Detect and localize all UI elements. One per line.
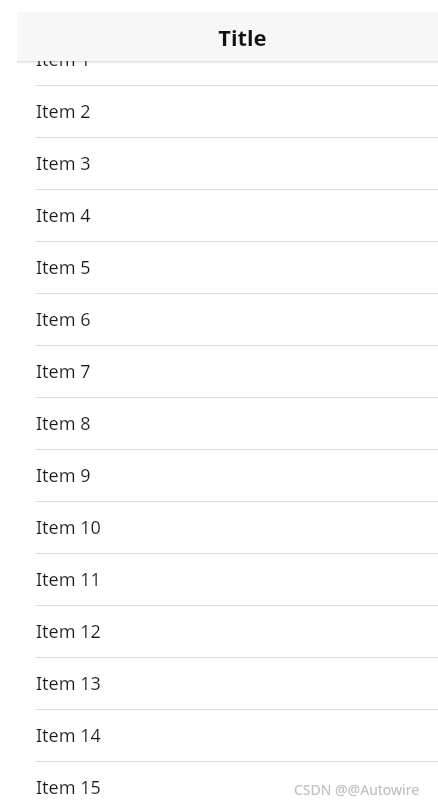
button[interactable]: Item 15	[0, 762, 438, 811]
button[interactable]: Item 5	[0, 242, 438, 294]
staticText: Item 7	[36, 359, 91, 384]
button[interactable]: Item 11	[0, 554, 438, 606]
staticText: Title	[218, 22, 267, 52]
button[interactable]: Item 2	[0, 86, 438, 138]
button[interactable]: Title	[17, 12, 438, 61]
button[interactable]: Item 14	[0, 710, 438, 762]
button[interactable]: Item 7	[0, 346, 438, 398]
staticText: Item 5	[36, 255, 91, 280]
staticText: Item 6	[36, 307, 91, 332]
staticText: Item 11	[36, 567, 101, 592]
staticText: Item 4	[36, 203, 91, 228]
staticText: CSDN @@Autowire	[294, 780, 420, 799]
staticText: Item 12	[36, 619, 101, 644]
button[interactable]: Item 12	[0, 606, 438, 658]
staticText: Item 13	[36, 671, 101, 696]
button[interactable]: Item 3	[0, 138, 438, 190]
button[interactable]: Item 4	[0, 190, 438, 242]
staticText: Item 15	[36, 775, 101, 800]
staticText: Item 14	[36, 723, 101, 748]
button[interactable]: Item 10	[0, 502, 438, 554]
button[interactable]: Item 6	[0, 294, 438, 346]
staticText: Item 3	[36, 151, 91, 176]
staticText: Item 2	[36, 99, 91, 124]
button[interactable]: Item 1	[0, 34, 438, 86]
staticText: Item 9	[36, 463, 91, 488]
button[interactable]: Item 8	[0, 398, 438, 450]
staticText: Item 10	[36, 515, 101, 540]
staticText: Item 1	[36, 47, 91, 72]
staticText: Item 8	[36, 411, 91, 436]
button[interactable]: Item 9	[0, 450, 438, 502]
button[interactable]: Item 13	[0, 658, 438, 710]
